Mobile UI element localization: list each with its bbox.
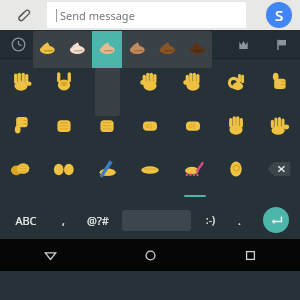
button[interactable]: Objects: [224, 30, 262, 58]
button[interactable]: Backspace: [257, 147, 300, 191]
button[interactable]: Emoji: [42, 59, 85, 103]
button[interactable]: Emoji: [128, 59, 171, 103]
button[interactable]: :-): [194, 201, 227, 239]
staticText: :-): [206, 213, 215, 227]
button[interactable]: People: [74, 30, 111, 58]
button[interactable]: Emoji: [257, 59, 300, 103]
button[interactable]: Attach: [12, 4, 34, 26]
button[interactable]: Food: [148, 30, 186, 58]
button[interactable]: .: [227, 201, 252, 239]
button[interactable]: Emoji: [128, 147, 171, 191]
button[interactable]: Emoji: [0, 103, 42, 147]
button[interactable]: Skin tone 2: [62, 31, 92, 68]
button[interactable]: Activity: [186, 30, 224, 58]
button[interactable]: Emoji: [0, 59, 42, 103]
staticText: S: [275, 5, 284, 25]
button[interactable]: Skin tone 3: [92, 31, 122, 68]
button[interactable]: Send: [263, 207, 289, 233]
button[interactable]: Profile: [266, 2, 292, 28]
button[interactable]: @?#: [76, 201, 119, 239]
button[interactable]: Send message: [47, 2, 246, 28]
staticText: ,: [62, 213, 65, 228]
button[interactable]: Emoji: [85, 103, 128, 147]
button[interactable]: Skin tone 4: [122, 31, 152, 68]
button[interactable]: Emoji: [214, 103, 257, 147]
button[interactable]: Smileys: [37, 30, 74, 58]
staticText: .: [238, 213, 241, 228]
button[interactable]: Emoji: [42, 103, 85, 147]
button[interactable]: Flags: [262, 30, 300, 58]
button[interactable]: Emoji: [128, 103, 171, 147]
button[interactable]: Recents: [200, 239, 300, 271]
button[interactable]: Emoji: [171, 147, 214, 191]
button[interactable]: Emoji: [0, 147, 42, 191]
staticText: @?#: [87, 213, 109, 228]
button[interactable]: ABC: [0, 201, 51, 239]
button[interactable]: Skin tone 1: [33, 31, 62, 68]
button[interactable]: ,: [51, 201, 76, 239]
button[interactable]: Skin tone 5: [152, 31, 182, 68]
button[interactable]: Animals: [111, 30, 148, 58]
button[interactable]: Emoji: [42, 147, 85, 191]
button[interactable]: Emoji: [171, 59, 214, 103]
button[interactable]: Recent: [0, 30, 37, 58]
staticText: ABC: [15, 213, 37, 228]
button[interactable]: Emoji: [85, 59, 128, 103]
button[interactable]: Emoji: [85, 147, 128, 191]
button[interactable]: Home: [100, 239, 200, 271]
button[interactable]: Emoji: [257, 103, 300, 147]
button[interactable]: Emoji: [214, 59, 257, 103]
button[interactable]: Back: [0, 239, 100, 271]
button[interactable]: Skin tone 6: [182, 31, 212, 68]
button[interactable]: Emoji: [171, 103, 214, 147]
staticText: Send message: [60, 8, 135, 23]
button[interactable]: Emoji: [214, 147, 257, 191]
